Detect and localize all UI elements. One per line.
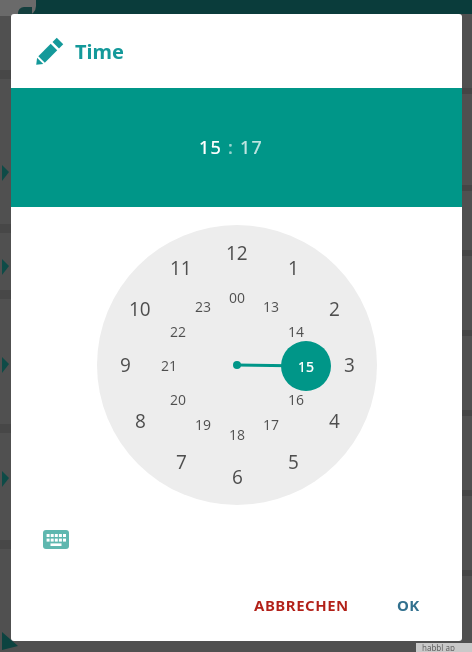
- button[interactable]: ABBRECHEN: [239, 586, 363, 624]
- staticText: 2: [329, 296, 340, 322]
- staticText: 3: [344, 352, 355, 378]
- staticText: 15: [298, 357, 315, 376]
- staticText: 19: [195, 415, 212, 434]
- staticText: 6: [232, 464, 243, 490]
- staticText: 4: [329, 408, 340, 434]
- staticText: OK: [397, 595, 420, 615]
- staticText: 11: [170, 255, 192, 281]
- staticText: ABBRECHEN: [254, 595, 349, 615]
- button[interactable]: [33, 520, 79, 558]
- staticText: 14: [288, 322, 305, 341]
- staticText: 17: [240, 135, 263, 160]
- staticText: :: [222, 135, 240, 160]
- staticText: 22: [170, 322, 187, 341]
- staticText: 9: [120, 352, 131, 378]
- staticText: 5: [288, 449, 299, 475]
- staticText: Time: [75, 38, 124, 65]
- staticText: 8: [135, 408, 146, 434]
- staticText: 17: [263, 415, 280, 434]
- staticText: habbl ap: [422, 642, 455, 651]
- staticText: 18: [229, 425, 246, 444]
- staticText: 13: [263, 297, 280, 316]
- staticText: 7: [176, 449, 187, 475]
- staticText: 12: [226, 240, 248, 266]
- staticText: 10: [129, 296, 151, 322]
- staticText: 20: [170, 390, 187, 409]
- staticText: 00: [229, 288, 246, 307]
- staticText: 15: [199, 135, 222, 160]
- staticText: 23: [195, 297, 212, 316]
- button[interactable]: OK: [383, 586, 433, 624]
- staticText: 1: [288, 255, 299, 281]
- staticText: 16: [288, 390, 305, 409]
- staticText: 21: [161, 356, 178, 375]
